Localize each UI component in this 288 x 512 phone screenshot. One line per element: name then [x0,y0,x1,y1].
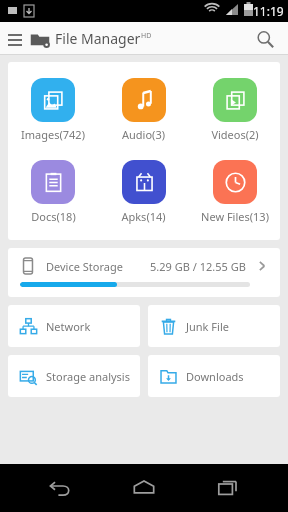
staticText: 5.29 GB / 12.55 GB [150,259,246,274]
staticText: Audio(3) [122,127,165,142]
staticText: Images(742) [21,127,85,142]
button[interactable]: Images(742) [8,76,98,144]
staticText: Downloads [186,369,244,384]
button[interactable]: Network [8,305,140,347]
button[interactable]: New Files(13) [189,158,280,226]
staticText: Videos(2) [211,127,259,142]
staticText: File Manager [55,29,141,48]
button[interactable]: Junk File [148,305,280,347]
staticText: Device Storage [46,259,123,274]
button[interactable]: Storage analysis [8,355,140,397]
button[interactable]: Apks(14) [98,158,189,226]
staticText: Apks(14) [121,209,166,224]
staticText: Storage analysis [46,369,130,384]
button[interactable]: Audio(3) [98,76,189,144]
staticText: Junk File [186,319,229,334]
button[interactable]: Recents [204,464,252,512]
staticText: HD [141,31,152,41]
button[interactable]: Downloads [148,355,280,397]
staticText: New Files(13) [201,209,269,224]
button[interactable]: Home [120,464,168,512]
button[interactable]: Videos(2) [189,76,280,144]
button[interactable]: Menu [4,28,26,50]
staticText: Network [46,319,91,334]
button[interactable]: Search [250,24,280,54]
staticText: Docs(18) [31,209,76,224]
button[interactable]: Docs(18) [8,158,98,226]
button[interactable]: Device Storage [8,248,280,297]
staticText: 11:19 [253,3,284,19]
button[interactable]: Back [36,464,84,512]
